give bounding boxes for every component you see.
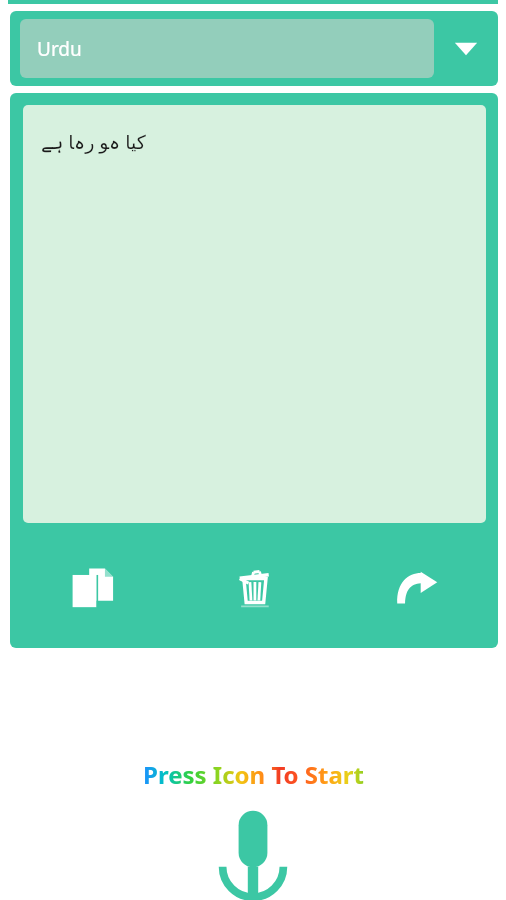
button[interactable]: Share bbox=[335, 523, 498, 648]
staticText: کیا ہو رہا ہے bbox=[41, 129, 146, 155]
button[interactable]: Urdu bbox=[10, 11, 498, 86]
staticText: Press Icon To Start bbox=[143, 758, 364, 791]
button[interactable]: Copy bbox=[10, 523, 172, 648]
button[interactable]: کیا ہو رہا ہے bbox=[23, 105, 486, 523]
staticText: Urdu bbox=[37, 36, 82, 62]
button[interactable]: Start listening bbox=[207, 809, 299, 900]
button[interactable]: Delete bbox=[172, 523, 335, 648]
